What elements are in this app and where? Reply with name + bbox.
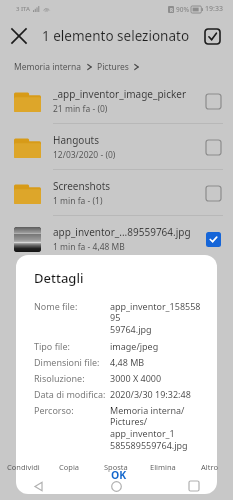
staticText: app_inventor_15855895 59764.jpg — [110, 300, 203, 336]
staticText: 1 min fa - 4,48 MB — [53, 241, 125, 253]
staticText: 1 min fa - (1) — [53, 195, 103, 207]
staticText: 21 min fa - (0) — [53, 103, 108, 115]
staticText: OK — [111, 468, 127, 482]
button[interactable]: Seleziona tutto — [193, 17, 231, 55]
staticText: Altro — [201, 462, 218, 472]
staticText: app_inventor_...89559764.jpg — [53, 225, 191, 239]
staticText: Sposta — [104, 462, 128, 472]
button[interactable]: Altro — [186, 458, 233, 472]
staticText: Percorso: — [34, 404, 74, 416]
staticText: 2020/3/30 19:32:48 — [110, 388, 191, 400]
button[interactable]: Selezionato — [206, 232, 221, 247]
button[interactable]: Recenti — [155, 472, 233, 500]
staticText: Tipo file: — [34, 340, 70, 352]
staticText: Nome file: — [34, 300, 78, 312]
staticText: image/jpeg — [110, 340, 159, 352]
staticText: 90% — [176, 5, 189, 14]
button[interactable]: Seleziona — [206, 94, 221, 109]
button[interactable]: Home — [77, 472, 155, 500]
button[interactable]: Indietro — [0, 472, 77, 500]
button[interactable]: Copia — [46, 458, 92, 472]
staticText: R — [170, 7, 173, 13]
button[interactable]: _app_inventor_image_picker — [0, 78, 233, 124]
button[interactable]: Memoria interna — [14, 61, 82, 73]
staticText: 3000 X 4000 — [110, 372, 162, 384]
button[interactable]: Chiudi — [0, 17, 38, 55]
staticText: _app_inventor_image_picker — [53, 87, 187, 101]
staticText: 19:33 — [205, 4, 223, 14]
button[interactable]: Screenshots — [0, 170, 233, 216]
staticText: Screenshots — [53, 179, 111, 193]
button[interactable]: Sposta — [92, 458, 139, 472]
staticText: Memoria interna — [14, 61, 82, 73]
staticText: Pictures — [97, 61, 129, 73]
button[interactable]: Condividi — [0, 458, 46, 472]
staticText: 12/03/2020 - (0) — [53, 149, 116, 161]
staticText: 3 ITA — [16, 5, 30, 13]
button[interactable]: Hangouts — [0, 124, 233, 170]
staticText: Hangouts — [53, 133, 99, 147]
staticText: 4,48 MB — [110, 356, 145, 368]
staticText: Risoluzione: — [34, 372, 85, 384]
staticText: Copia — [59, 462, 80, 472]
staticText: Memoria interna/ Pictures/app_inventor_1… — [110, 404, 203, 452]
staticText: Dettagli — [34, 269, 84, 287]
button[interactable]: OK — [97, 464, 141, 486]
button[interactable]: app_inventor_...89559764.jpg — [0, 216, 233, 262]
staticText: Dimensioni file: — [34, 356, 100, 368]
button[interactable]: Seleziona — [206, 140, 221, 155]
staticText: Elimina — [150, 462, 176, 472]
staticText: Data di modifica: — [34, 388, 106, 400]
button[interactable]: Elimina — [139, 458, 186, 472]
staticText: Condividi — [7, 462, 40, 472]
button[interactable]: Seleziona — [206, 186, 221, 201]
button[interactable]: Pictures — [97, 61, 129, 73]
staticText: 1 elemento selezionato — [42, 27, 190, 45]
